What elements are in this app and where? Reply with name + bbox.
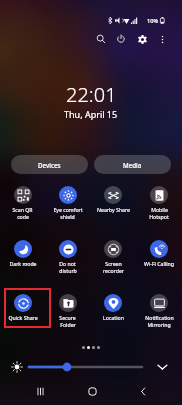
- button[interactable]: Location: [90, 292, 136, 346]
- staticText: Devices: [38, 161, 61, 169]
- staticText: Scan QR: [12, 206, 33, 213]
- staticText: Mirroring: [147, 321, 171, 328]
- staticText: Folder: [60, 321, 76, 328]
- button[interactable]: Scan QR: [0, 184, 45, 238]
- button[interactable]: Wi-Fi Calling: [136, 238, 182, 292]
- button[interactable]: Notification: [136, 292, 182, 346]
- button[interactable]: Secure: [45, 292, 90, 346]
- staticText: recorder: [103, 267, 124, 274]
- button[interactable]: Devices: [11, 155, 88, 174]
- button[interactable]: Home: [83, 382, 101, 400]
- staticText: Dark mode: [9, 260, 37, 267]
- button[interactable]: Quick Share: [0, 292, 45, 346]
- staticText: Hotspot: [149, 213, 169, 220]
- staticText: Screen: [105, 260, 122, 267]
- staticText: Do not: [59, 260, 76, 267]
- button[interactable]: Dark mode: [0, 238, 45, 292]
- staticText: code: [17, 213, 29, 220]
- staticText: Quick Share: [8, 314, 38, 321]
- button[interactable]: Recent apps: [31, 382, 49, 400]
- button[interactable]: Do not: [45, 238, 90, 292]
- staticText: Mobile: [151, 206, 168, 213]
- button[interactable]: Settings: [133, 30, 151, 48]
- button[interactable]: Eye comfort: [45, 184, 90, 238]
- staticText: Location: [103, 314, 124, 321]
- button[interactable]: Power: [112, 30, 130, 48]
- staticText: 10%: [147, 17, 159, 25]
- staticText: Media: [123, 161, 142, 169]
- button[interactable]: Search: [92, 30, 110, 48]
- staticText: Notification: [145, 314, 174, 321]
- staticText: Nearby Share: [97, 206, 130, 213]
- button[interactable]: Brightness: [24, 359, 148, 375]
- staticText: disturb: [59, 267, 77, 274]
- button[interactable]: Media: [94, 155, 171, 174]
- staticText: shield: [60, 213, 75, 220]
- staticText: Secure: [59, 314, 76, 321]
- staticText: Wi-Fi Calling: [144, 260, 174, 267]
- button[interactable]: Nearby Share: [90, 184, 136, 238]
- staticText: Thu, April 15: [64, 108, 118, 120]
- button[interactable]: Screen: [90, 238, 136, 292]
- button[interactable]: Mobile: [136, 184, 182, 238]
- button[interactable]: Back: [134, 382, 152, 400]
- button[interactable]: Expand brightness settings: [153, 359, 171, 375]
- button[interactable]: More options: [153, 30, 171, 48]
- staticText: Eye comfort: [53, 206, 83, 213]
- staticText: 22:01: [66, 81, 117, 108]
